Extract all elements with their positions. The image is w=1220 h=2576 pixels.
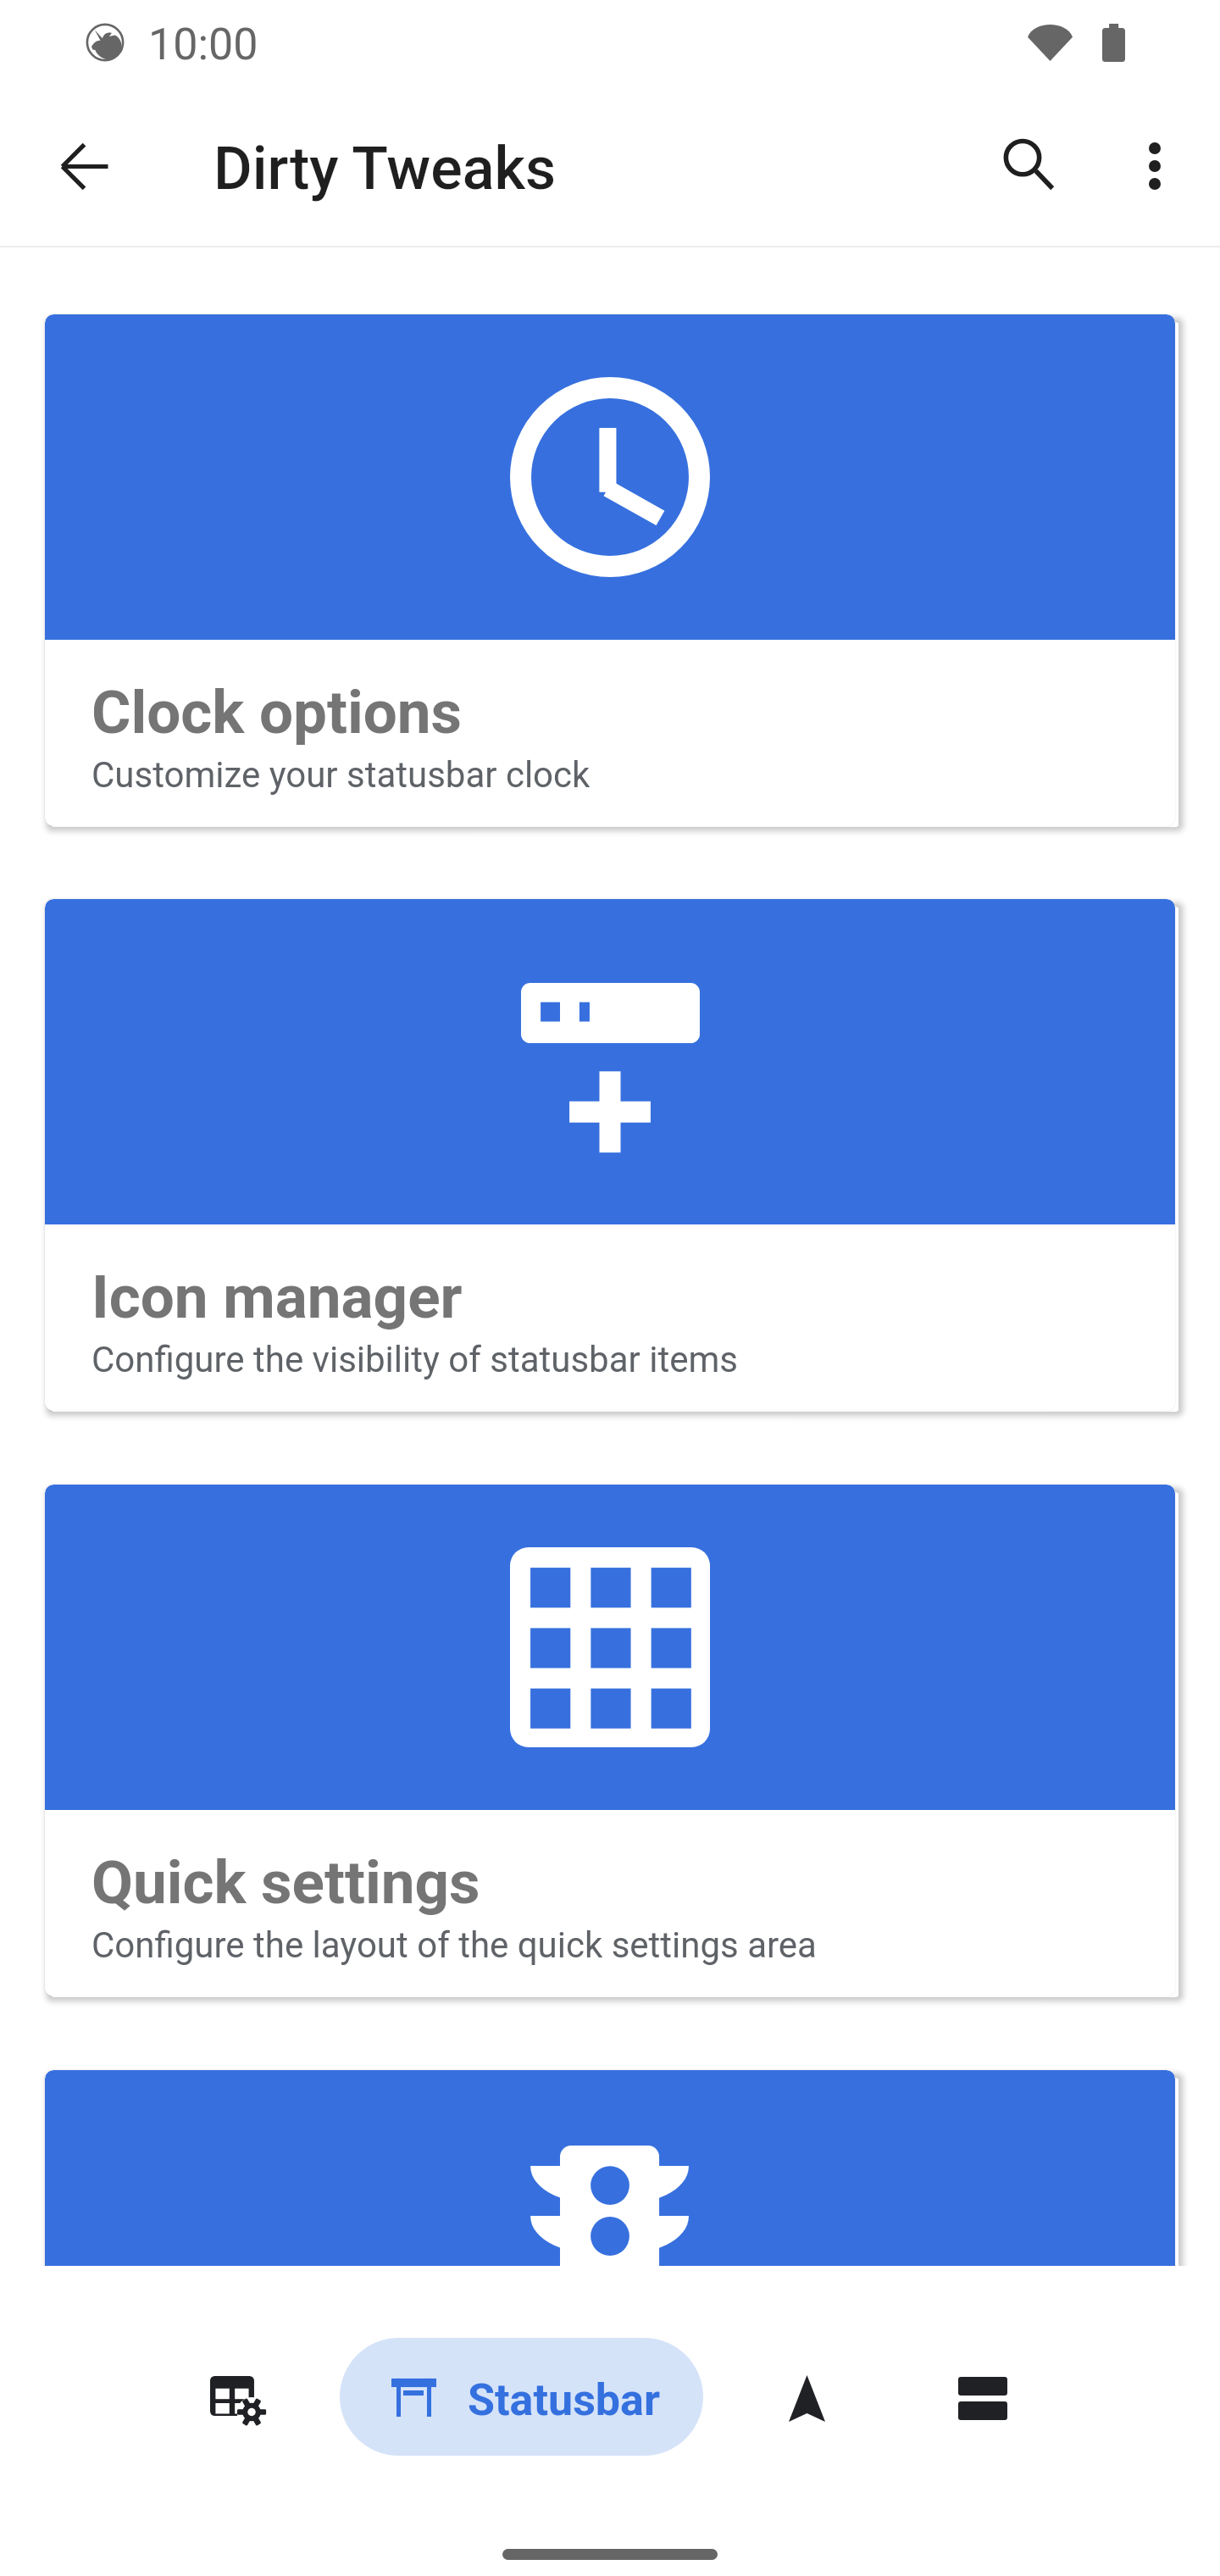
button[interactable]: Statusbar	[340, 2338, 703, 2456]
button[interactable]: Gesture bar	[890, 2303, 1076, 2493]
button[interactable]: Dashboard	[144, 2306, 330, 2495]
button[interactable]: Quick settings	[45, 1485, 1175, 1996]
staticText: Dirty Tweaks	[213, 134, 556, 203]
button[interactable]: Icon manager	[45, 899, 1175, 1411]
staticText: 10:00	[148, 19, 258, 70]
staticText: Icon manager	[91, 1262, 463, 1332]
staticText: Configure the visibility of statusbar it…	[91, 1339, 738, 1380]
staticText: Clock options	[91, 677, 463, 747]
button[interactable]: Back	[39, 121, 129, 211]
button[interactable]: Navigation bar	[713, 2303, 900, 2493]
button[interactable]: Clock options	[45, 314, 1175, 826]
staticText: Configure the layout of the quick settin…	[91, 1924, 817, 1966]
staticText: Customize your statusbar clock	[91, 754, 591, 796]
staticText: Quick settings	[91, 1847, 480, 1918]
button[interactable]: Search	[981, 117, 1076, 212]
staticText: Statusbar	[468, 2374, 660, 2426]
button[interactable]: Traffic indicators	[45, 2070, 1175, 2266]
button[interactable]: More options	[1107, 119, 1202, 214]
